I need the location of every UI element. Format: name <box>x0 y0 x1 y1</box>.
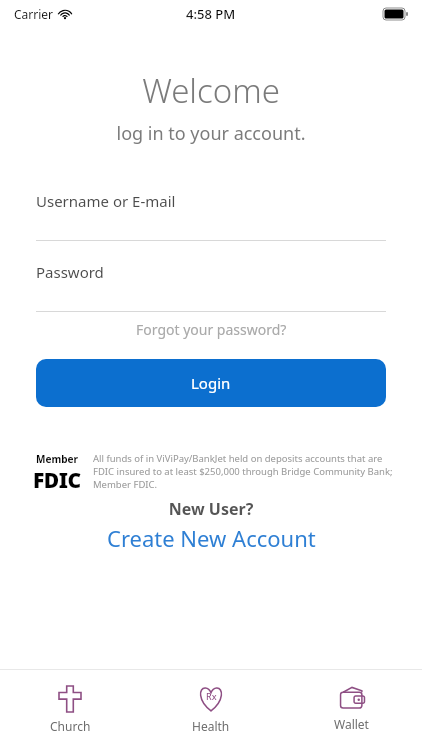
staticText: 4:58 PM <box>186 5 236 23</box>
staticText: Member <box>36 452 78 466</box>
staticText: Rx <box>206 690 217 702</box>
staticText: FDIC <box>33 466 81 495</box>
button[interactable]: Health <box>140 670 281 750</box>
staticText: New User? <box>0 498 422 520</box>
button[interactable]: Church <box>0 670 140 750</box>
staticText: Carrier <box>14 6 54 22</box>
staticText: Create New Account <box>107 523 316 553</box>
button[interactable]: Username or E-mail <box>36 191 386 241</box>
button[interactable]: Forgot your password? <box>0 320 422 339</box>
staticText: Password <box>36 262 104 282</box>
button[interactable]: Login <box>36 359 386 407</box>
staticText: log in to your account. <box>0 121 422 146</box>
button[interactable]: Wallet <box>281 670 422 750</box>
staticText: Forgot your password? <box>136 320 287 339</box>
button[interactable]: Password <box>36 262 386 312</box>
staticText: Welcome <box>0 68 422 113</box>
staticText: Church <box>50 718 91 734</box>
staticText: All funds of in ViViPay/BankJet held on … <box>93 452 402 491</box>
button[interactable]: Create New Account <box>0 523 422 553</box>
staticText: Health <box>192 718 230 734</box>
staticText: Username or E-mail <box>36 191 176 211</box>
staticText: Wallet <box>334 716 369 732</box>
staticText: Login <box>191 373 231 393</box>
